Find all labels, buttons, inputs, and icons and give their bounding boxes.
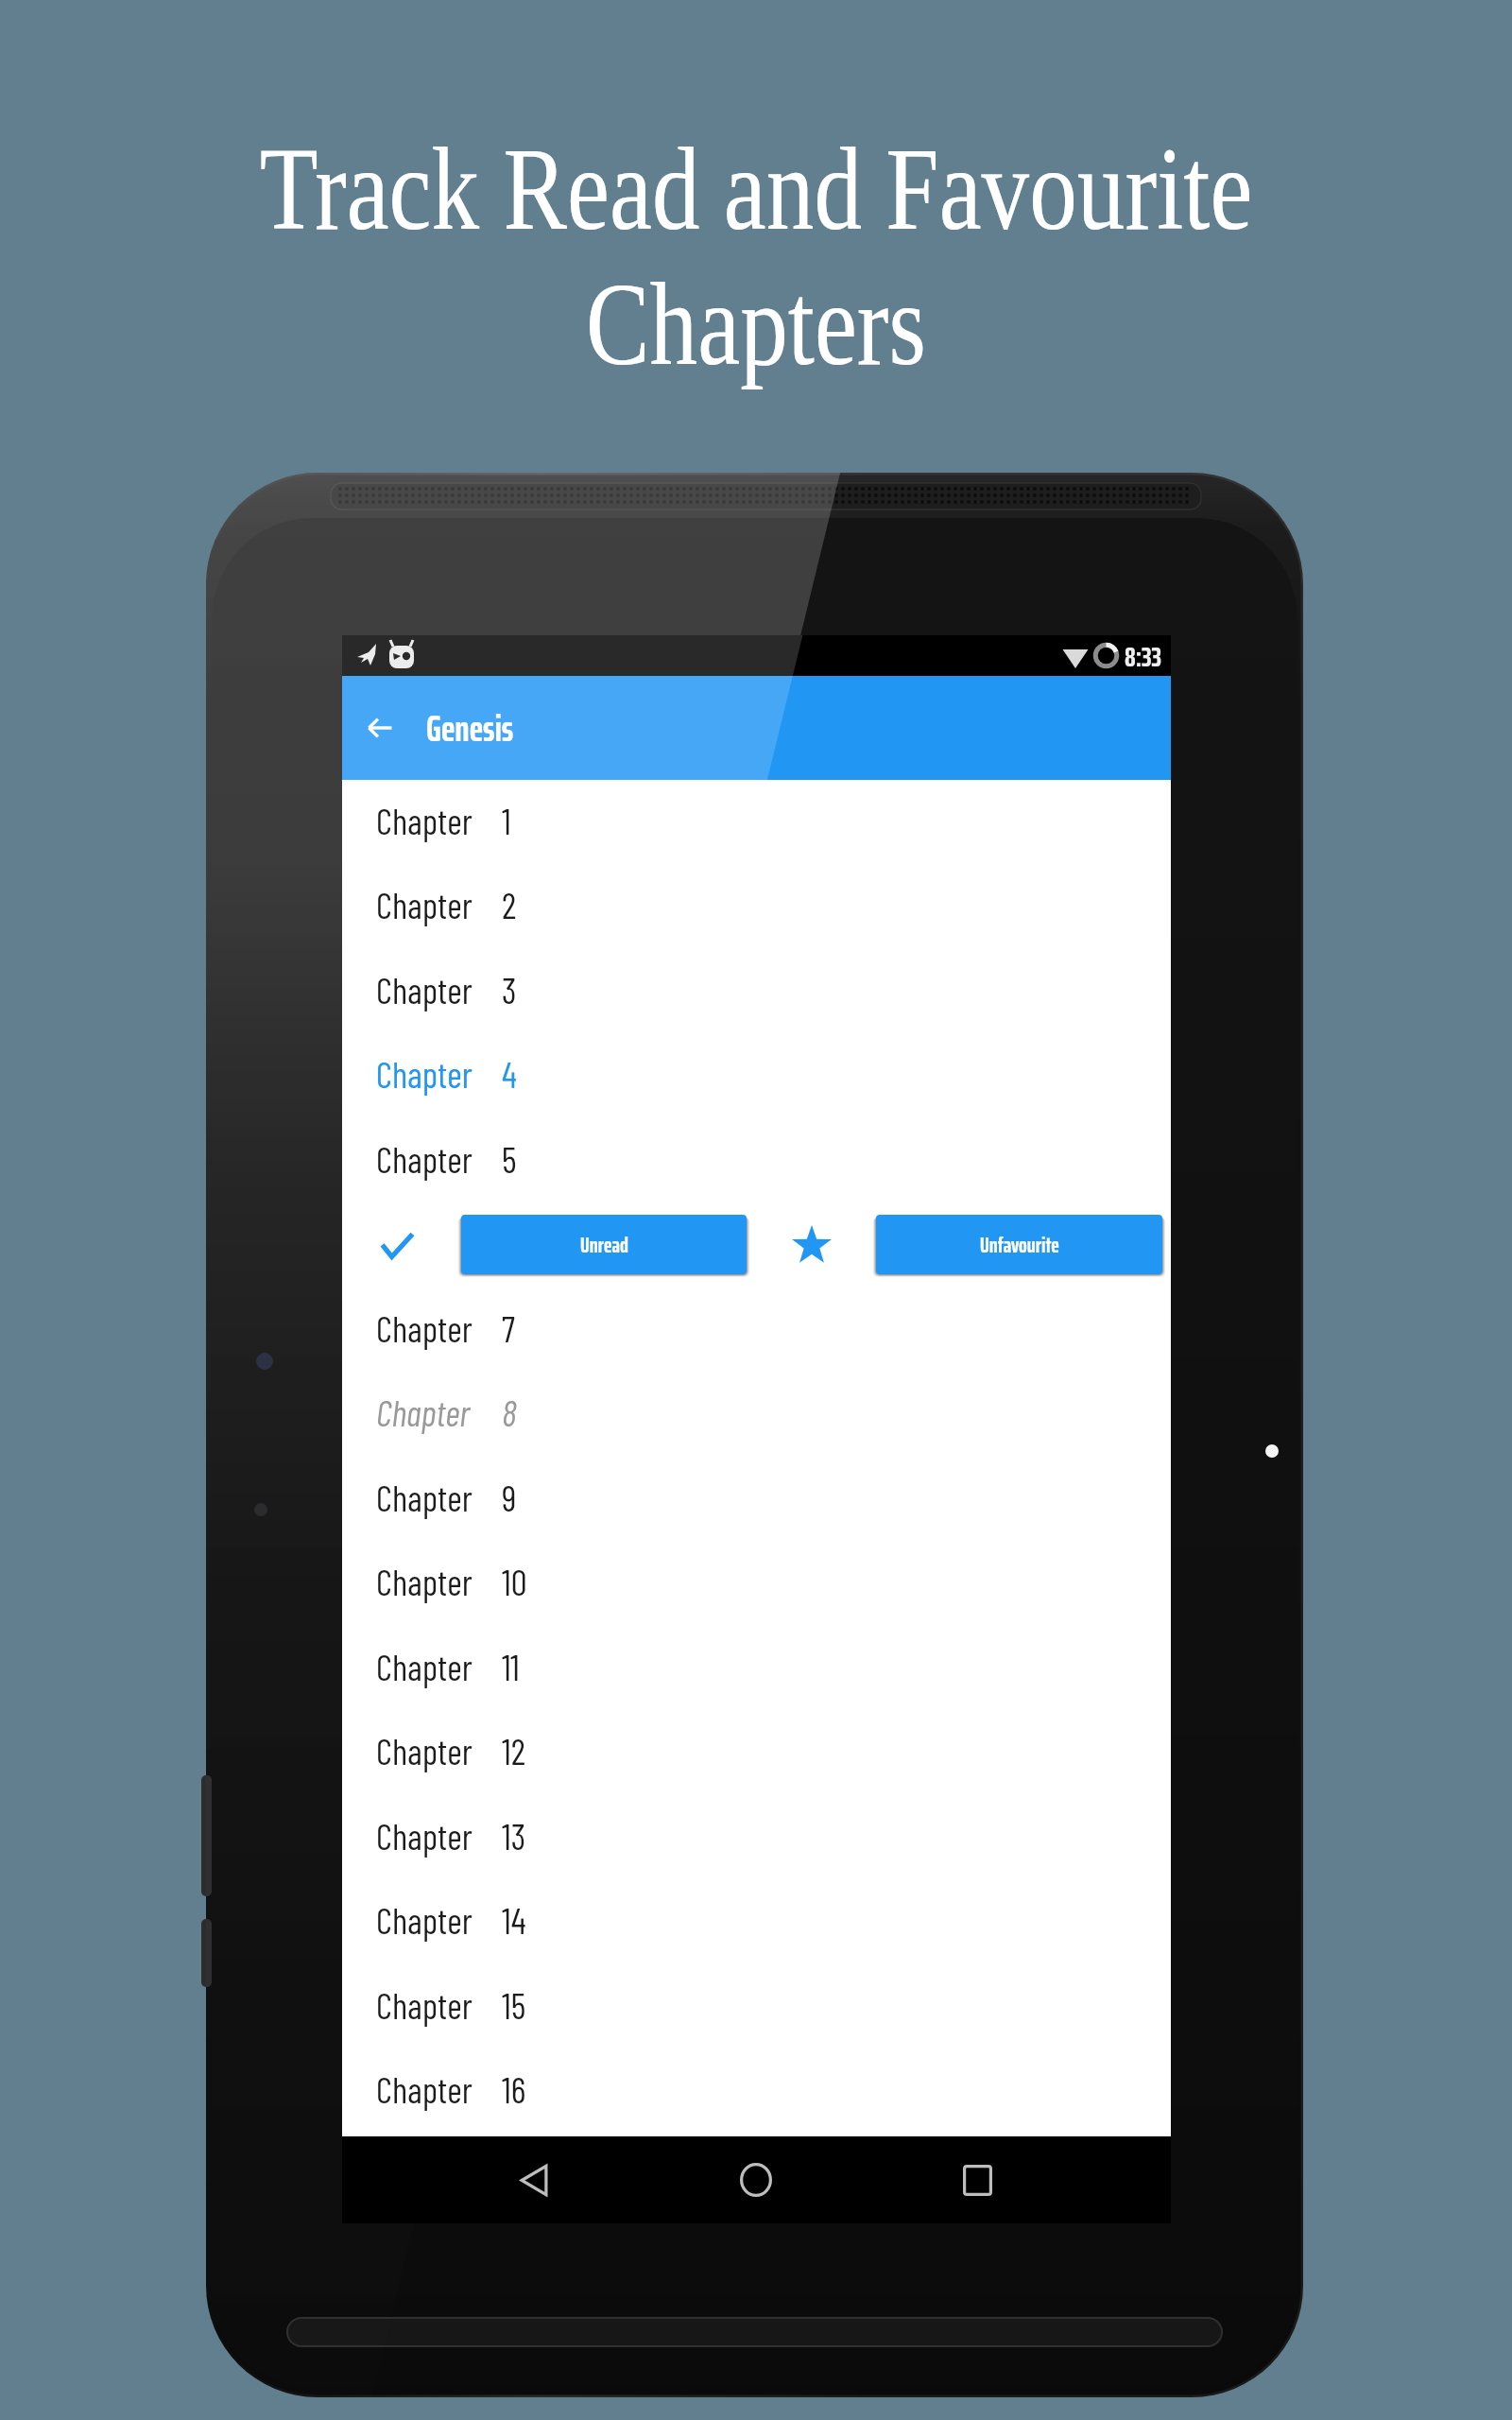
staticText: 11 bbox=[502, 1645, 520, 1688]
staticText: Chapter bbox=[376, 1391, 471, 1434]
staticText: 7 bbox=[502, 1306, 515, 1350]
staticText: Unread bbox=[580, 1228, 628, 1262]
staticText: Chapter bbox=[376, 1898, 472, 1942]
button[interactable]: Chapter bbox=[342, 1033, 1171, 1117]
staticText: 2 bbox=[502, 883, 517, 926]
staticText: Chapter bbox=[376, 1645, 472, 1688]
staticText: 5 bbox=[502, 1137, 517, 1181]
staticText: Genesis bbox=[426, 700, 514, 757]
staticText: 1 bbox=[502, 799, 511, 842]
staticText: 12 bbox=[502, 1729, 526, 1772]
staticText: 8 bbox=[502, 1391, 517, 1434]
button[interactable]: Chapter bbox=[342, 1626, 1171, 1710]
staticText: Track Read and Favourite Chapters bbox=[259, 124, 1253, 389]
staticText: Chapter bbox=[376, 1983, 472, 2027]
button[interactable]: Chapter bbox=[342, 1964, 1171, 2048]
button[interactable]: Navigate up bbox=[342, 676, 1171, 780]
button[interactable]: Chapter bbox=[342, 864, 1171, 948]
staticText: Chapter bbox=[376, 799, 472, 842]
button[interactable]: Chapter bbox=[342, 1457, 1171, 1541]
button[interactable]: Chapter bbox=[342, 1879, 1171, 1963]
button[interactable]: Remove from favourites bbox=[780, 1213, 844, 1277]
staticText: 14 bbox=[502, 1898, 526, 1942]
button[interactable]: Unfavourite bbox=[876, 1215, 1162, 1274]
staticText: Chapter bbox=[376, 1137, 472, 1181]
button[interactable]: Chapter bbox=[342, 1372, 1171, 1456]
staticText: 3 bbox=[502, 968, 517, 1011]
staticText: Chapter bbox=[376, 1560, 472, 1603]
button[interactable]: Home bbox=[713, 2138, 799, 2221]
staticText: 9 bbox=[502, 1476, 517, 1519]
staticText: 4 bbox=[502, 1052, 517, 1096]
button[interactable]: Unread bbox=[461, 1215, 747, 1274]
staticText: Chapter bbox=[376, 968, 472, 1011]
button[interactable]: Back bbox=[490, 2138, 577, 2221]
staticText: Chapter bbox=[376, 1476, 472, 1519]
button[interactable]: Recent apps bbox=[934, 2138, 1021, 2221]
staticText: Unfavourite bbox=[980, 1228, 1059, 1262]
staticText: Chapter bbox=[376, 883, 472, 926]
button[interactable]: Chapter bbox=[342, 2048, 1171, 2133]
staticText: 8:33 bbox=[1125, 635, 1162, 676]
button[interactable]: Chapter bbox=[342, 1541, 1171, 1625]
staticText: Chapter bbox=[376, 1052, 472, 1096]
button[interactable]: Chapter bbox=[342, 1795, 1171, 1879]
button[interactable]: Mark as unread bbox=[365, 1213, 429, 1277]
button[interactable]: Chapter bbox=[342, 1118, 1171, 1202]
staticText: 16 bbox=[502, 2067, 526, 2111]
staticText: Chapter bbox=[376, 1729, 472, 1772]
button[interactable]: Chapter bbox=[342, 780, 1171, 864]
staticText: Chapter bbox=[376, 1814, 472, 1858]
staticText: Chapter bbox=[376, 1306, 472, 1350]
staticText: 15 bbox=[502, 1983, 526, 2027]
button[interactable]: Chapter bbox=[342, 1710, 1171, 1794]
staticText: 10 bbox=[502, 1560, 527, 1603]
button[interactable]: Chapter bbox=[342, 949, 1171, 1033]
staticText: Chapter bbox=[376, 2067, 472, 2111]
button[interactable]: Chapter bbox=[342, 1288, 1171, 1372]
staticText: 13 bbox=[502, 1814, 526, 1858]
button[interactable]: Navigate up bbox=[353, 701, 406, 754]
